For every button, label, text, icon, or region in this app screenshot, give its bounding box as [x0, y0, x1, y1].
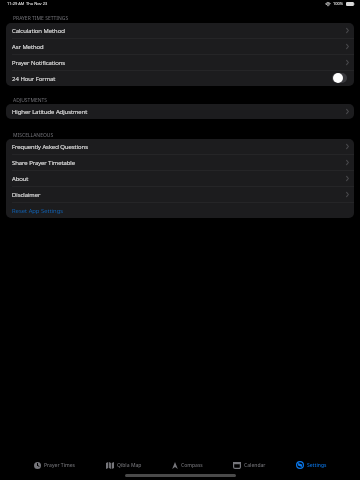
staticText: Compass: [181, 462, 203, 469]
staticText: Calendar: [244, 462, 266, 469]
staticText: Asr Method: [12, 43, 44, 51]
staticText: Reset App Settings: [12, 207, 64, 215]
button[interactable]: 24 Hour Format toggle: [332, 73, 347, 83]
button[interactable]: Compass: [169, 458, 206, 473]
staticText: 24 Hour Format: [12, 75, 56, 83]
button[interactable]: Higher Latitude Adjustment: [6, 104, 354, 119]
button[interactable]: Share Prayer Timetable: [6, 155, 354, 170]
staticText: Calculation Method: [12, 27, 65, 35]
staticText: Thu Nov 23: [26, 1, 48, 6]
staticText: Disclaimer: [12, 191, 41, 199]
button[interactable]: Calendar: [230, 458, 269, 473]
button[interactable]: 24 Hour Format: [6, 71, 354, 86]
button[interactable]: Asr Method: [6, 39, 354, 54]
button[interactable]: Prayer Notifications: [6, 55, 354, 70]
staticText: Settings: [307, 462, 327, 469]
staticText: Share Prayer Timetable: [12, 159, 76, 167]
staticText: MISCELLANEOUS: [13, 132, 54, 139]
staticText: Prayer Times: [44, 462, 76, 469]
staticText: PRAYER TIME SETTINGS: [13, 15, 69, 22]
button[interactable]: Calculation Method: [6, 23, 354, 38]
staticText: Prayer Notifications: [12, 59, 66, 67]
button[interactable]: Prayer Times: [31, 458, 79, 473]
button[interactable]: Frequently Asked Questions: [6, 139, 354, 154]
staticText: Higher Latitude Adjustment: [12, 108, 88, 116]
staticText: Frequently Asked Questions: [12, 143, 88, 151]
button[interactable]: Settings: [293, 457, 330, 473]
staticText: About: [12, 175, 29, 183]
staticText: 100%: [333, 1, 344, 6]
button[interactable]: Qibla Map: [103, 458, 145, 473]
staticText: ADJUSTMENTS: [13, 97, 48, 104]
button[interactable]: Reset App Settings: [6, 203, 354, 218]
staticText: Qibla Map: [117, 462, 142, 469]
staticText: 11:29 AM: [7, 1, 25, 6]
button[interactable]: About: [6, 171, 354, 186]
button[interactable]: Disclaimer: [6, 187, 354, 202]
